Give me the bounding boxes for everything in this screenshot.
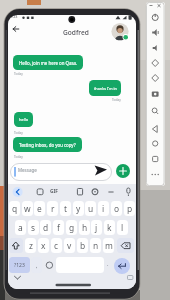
- button[interactable]: x: [38, 238, 49, 253]
- button[interactable]: c: [51, 238, 62, 253]
- staticText: Hello, join me here on Qasa.: [19, 60, 78, 66]
- button[interactable]: [114, 258, 130, 274]
- staticText: Testing inbox, do you copy?: [19, 142, 76, 148]
- staticText: t: [64, 203, 68, 214]
- staticText: .: [107, 260, 109, 267]
- staticText: q: [12, 203, 18, 214]
- button[interactable]: f: [53, 220, 64, 235]
- staticText: h: [82, 222, 88, 233]
- button[interactable]: b: [77, 238, 88, 253]
- button[interactable]: u: [85, 201, 96, 216]
- button[interactable]: [111, 23, 129, 41]
- button[interactable]: s: [28, 220, 39, 235]
- button[interactable]: [12, 25, 20, 33]
- staticText: x: [41, 240, 46, 251]
- staticText: GIF: [50, 188, 58, 195]
- button[interactable]: v: [64, 238, 75, 253]
- button[interactable]: h: [79, 220, 90, 235]
- button[interactable]: r: [47, 201, 58, 216]
- button[interactable]: Testing inbox, do you copy?: [13, 137, 82, 152]
- staticText: i: [102, 203, 105, 214]
- button[interactable]: z: [25, 238, 36, 253]
- button[interactable]: k: [104, 220, 115, 235]
- staticText: k: [107, 222, 112, 233]
- button[interactable]: [9, 238, 23, 253]
- button[interactable]: t: [60, 201, 71, 216]
- staticText: a: [18, 222, 23, 233]
- button[interactable]: j: [91, 220, 102, 235]
- button[interactable]: e: [34, 201, 45, 216]
- button[interactable]: ,: [31, 257, 42, 273]
- staticText: d: [43, 222, 49, 233]
- button[interactable]: a: [15, 220, 26, 235]
- staticText: Today: [14, 131, 23, 135]
- button[interactable]: l: [117, 220, 128, 235]
- staticText: thanks I'm in: [94, 86, 117, 91]
- staticText: n: [93, 240, 99, 251]
- button[interactable]: n: [90, 238, 101, 253]
- staticText: l: [121, 222, 124, 233]
- staticText: u: [88, 203, 94, 214]
- staticText: p: [127, 203, 133, 214]
- staticText: r: [51, 203, 55, 214]
- staticText: z: [29, 240, 33, 251]
- button[interactable]: d: [40, 220, 51, 235]
- staticText: j: [95, 222, 98, 233]
- button[interactable]: [93, 163, 108, 177]
- staticText: f: [57, 222, 60, 233]
- staticText: ,: [36, 262, 38, 269]
- button[interactable]: m: [103, 238, 114, 253]
- staticText: c: [54, 240, 59, 251]
- button[interactable]: [44, 259, 55, 271]
- staticText: Message: [18, 167, 37, 173]
- staticText: Today: [14, 155, 23, 159]
- staticText: s: [31, 222, 36, 233]
- button[interactable]: i: [98, 201, 109, 216]
- button[interactable]: ?123: [9, 257, 30, 273]
- button[interactable]: y: [73, 201, 84, 216]
- staticText: 1:23: [10, 14, 18, 19]
- button[interactable]: [10, 163, 112, 181]
- staticText: y: [76, 203, 81, 214]
- staticText: v: [67, 240, 72, 251]
- button[interactable]: thanks I'm in: [89, 80, 121, 96]
- staticText: o: [114, 203, 120, 214]
- button[interactable]: p: [124, 201, 135, 216]
- staticText: b: [80, 240, 86, 251]
- staticText: m: [105, 240, 113, 251]
- button[interactable]: o: [111, 201, 122, 216]
- staticText: w: [24, 203, 31, 214]
- staticText: g: [69, 222, 75, 233]
- staticText: Today: [14, 72, 23, 76]
- staticText: Today: [112, 98, 121, 102]
- staticText: e: [37, 203, 42, 214]
- button[interactable]: g: [66, 220, 77, 235]
- button[interactable]: q: [9, 201, 20, 216]
- staticText: hello: [19, 117, 29, 122]
- button[interactable]: hello: [14, 112, 33, 127]
- staticText: ?123: [14, 262, 25, 269]
- staticText: Godfred: [63, 28, 89, 37]
- button[interactable]: [116, 164, 130, 178]
- button[interactable]: Hello, join me here on Qasa.: [13, 55, 83, 70]
- button[interactable]: w: [22, 201, 33, 216]
- button[interactable]: [117, 238, 134, 253]
